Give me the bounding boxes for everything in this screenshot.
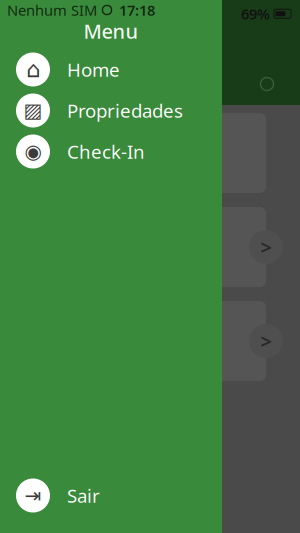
- button[interactable]: ◉: [0, 131, 222, 172]
- staticText: Propriedades: [67, 98, 183, 123]
- staticText: 69%: [241, 4, 270, 23]
- staticText: 17:18: [119, 0, 155, 20]
- staticText: >: [260, 328, 271, 354]
- staticText: ◉: [24, 140, 41, 163]
- button[interactable]: ▨: [0, 90, 222, 131]
- staticText: Check-In: [67, 139, 145, 164]
- staticText: Menu: [83, 18, 138, 44]
- staticText: ⇥: [24, 484, 41, 507]
- staticText: >: [260, 234, 271, 260]
- button[interactable]: Notifications: [256, 73, 278, 95]
- button[interactable]: ⌂: [0, 49, 222, 90]
- staticText: ▨: [23, 99, 42, 122]
- staticText: Home: [67, 57, 120, 82]
- button[interactable]: ⇥: [0, 475, 222, 516]
- staticText: ⌂: [26, 57, 40, 82]
- staticText: Sair: [67, 483, 100, 508]
- staticText: Nenhum SIM: [7, 0, 97, 20]
